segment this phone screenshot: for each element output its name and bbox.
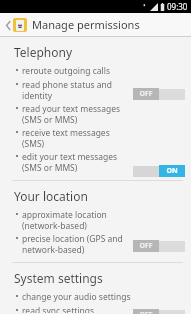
staticText: Telephony bbox=[14, 44, 73, 60]
button[interactable]: edit your text messages (SMS or MMS) bbox=[0, 150, 191, 174]
button[interactable]: change your audio settings bbox=[0, 290, 191, 304]
button[interactable]: receive text messages (SMS) bbox=[0, 126, 191, 150]
staticText: read sync settings bbox=[22, 305, 95, 313]
staticText: Your location bbox=[14, 188, 88, 204]
staticText: OFF bbox=[139, 241, 153, 251]
button[interactable]: approximate location (network-based) bbox=[0, 208, 191, 232]
staticText: System settings bbox=[14, 270, 103, 286]
staticText: OFF bbox=[139, 89, 153, 99]
staticText: approximate location (network-based) bbox=[22, 209, 107, 231]
button[interactable]: reroute outgoing calls bbox=[0, 64, 191, 78]
staticText: receive text messages (SMS) bbox=[22, 127, 131, 149]
button[interactable]: read sync settings bbox=[0, 304, 191, 314]
staticText: Manage permissions bbox=[32, 17, 140, 32]
staticText: change your audio settings bbox=[22, 291, 131, 303]
other: Navigate up bbox=[3, 16, 13, 34]
staticText: precise location (GPS and network-based) bbox=[22, 233, 123, 255]
staticText: read phone status and identity bbox=[22, 79, 112, 101]
button[interactable]: read your text messages (SMS or MMS) bbox=[0, 102, 191, 126]
button[interactable]: Navigate up bbox=[0, 13, 191, 36]
staticText: reroute outgoing calls bbox=[22, 65, 110, 77]
button[interactable]: Toggle off bbox=[133, 88, 185, 100]
staticText: 09:30 bbox=[167, 1, 188, 12]
staticText: read your text messages (SMS or MMS) bbox=[22, 103, 121, 125]
button[interactable]: precise location (GPS and network-based) bbox=[0, 232, 191, 256]
staticText: ON bbox=[166, 166, 178, 176]
button[interactable]: Toggle off bbox=[133, 309, 185, 314]
staticText: edit your text messages (SMS or MMS) bbox=[22, 151, 118, 173]
button[interactable]: Toggle off bbox=[133, 240, 185, 252]
button[interactable]: read phone status and identity bbox=[0, 78, 191, 102]
staticText: OFF bbox=[139, 310, 153, 314]
button[interactable]: Toggle on bbox=[133, 165, 185, 177]
